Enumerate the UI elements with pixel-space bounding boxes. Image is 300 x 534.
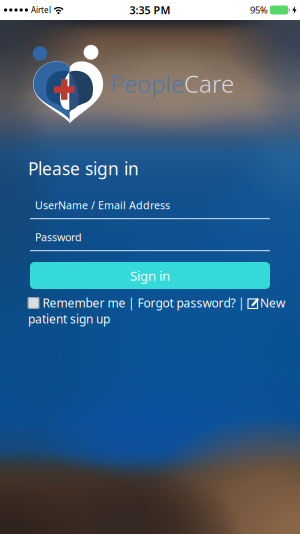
staticText: Sign in [130,267,170,284]
button[interactable]: UserName / Email Address [30,197,270,220]
staticText: 95% [250,4,268,16]
button[interactable]: Sign in [30,262,270,289]
button[interactable]: Forgot password? [137,295,235,311]
staticText: Airtel [31,5,51,15]
staticText: Please sign in [28,157,139,180]
button[interactable]: patient sign up [28,311,110,327]
staticText: Forgot password? [137,295,235,311]
staticText: Remember me [42,295,125,311]
button[interactable]: Remember me [27,295,125,311]
staticText: | [238,295,245,311]
button[interactable]: New [247,295,285,311]
staticText: Password [35,230,82,244]
staticText: | [128,295,135,311]
staticText: Care [184,67,234,99]
staticText: 3:35 PM [129,3,170,17]
staticText: People [110,67,184,99]
button[interactable]: Password [30,229,270,252]
staticText: New [260,295,285,311]
staticText: UserName / Email Address [35,198,170,212]
staticText: patient sign up [28,311,110,327]
